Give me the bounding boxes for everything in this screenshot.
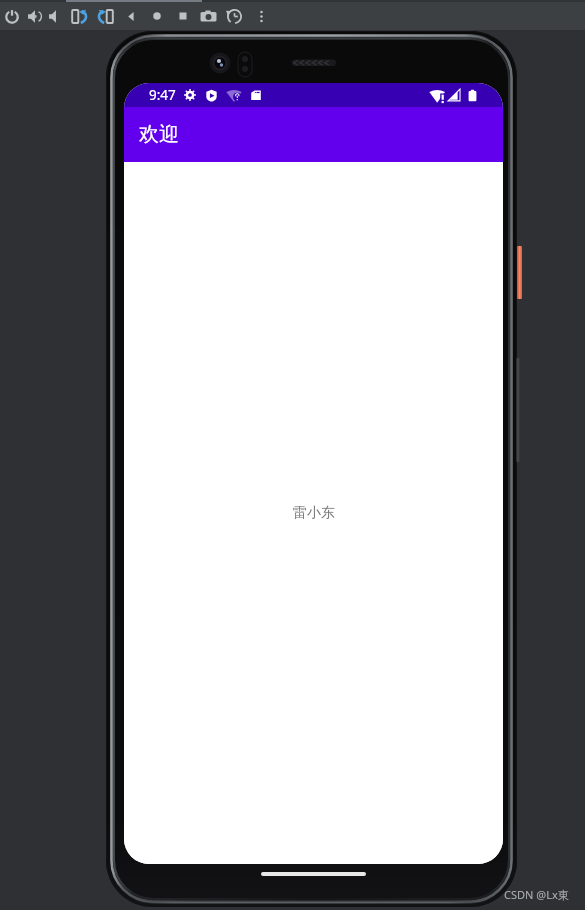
button[interactable]: Volume button [516, 358, 520, 462]
button[interactable]: Power [0, 2, 24, 30]
button[interactable]: Rotate history [222, 2, 246, 30]
button[interactable]: Overview [171, 2, 195, 30]
button[interactable]: Rotate left [67, 2, 91, 30]
button[interactable]: Volume up [22, 2, 46, 30]
button[interactable]: Home [145, 2, 169, 30]
staticText: CSDN @Lx東 [504, 887, 569, 902]
staticText: 雷小东 [293, 504, 335, 522]
button[interactable]: Power button [517, 246, 522, 299]
button[interactable]: More [249, 2, 273, 30]
button[interactable]: Back [119, 2, 143, 30]
button[interactable]: Volume down [43, 2, 67, 30]
button[interactable]: Rotate right [93, 2, 117, 30]
staticText: 9:47 [149, 86, 176, 104]
staticText: 欢迎 [139, 122, 179, 147]
button[interactable]: Screenshot [196, 2, 220, 30]
